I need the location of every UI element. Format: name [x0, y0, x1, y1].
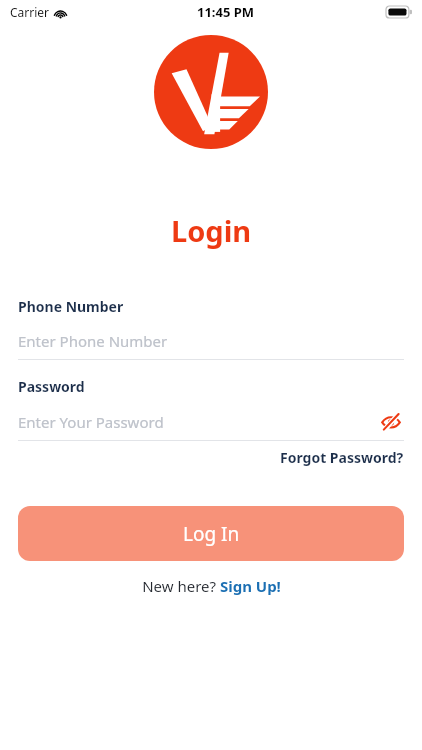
staticText: Log In — [183, 521, 240, 547]
staticText: New here? Sign Up! — [142, 576, 281, 596]
staticText: Login — [171, 211, 252, 250]
staticText: Enter Phone Number — [18, 331, 168, 351]
button[interactable]: New here? Sign Up! — [142, 576, 281, 596]
staticText: 11:45 PM — [197, 3, 255, 21]
button[interactable]: Log In — [18, 506, 404, 561]
button[interactable]: Enter Phone Number — [18, 330, 404, 352]
button[interactable]: Forgot Password? — [280, 448, 404, 467]
staticText: Phone Number — [18, 297, 124, 316]
staticText: Password — [18, 377, 85, 396]
staticText: Carrier — [10, 4, 50, 20]
button[interactable]: Enter Your Password — [18, 410, 378, 434]
staticText: Enter Your Password — [18, 412, 164, 432]
button[interactable]: Show password — [378, 410, 404, 434]
staticText: Forgot Password? — [280, 448, 404, 467]
